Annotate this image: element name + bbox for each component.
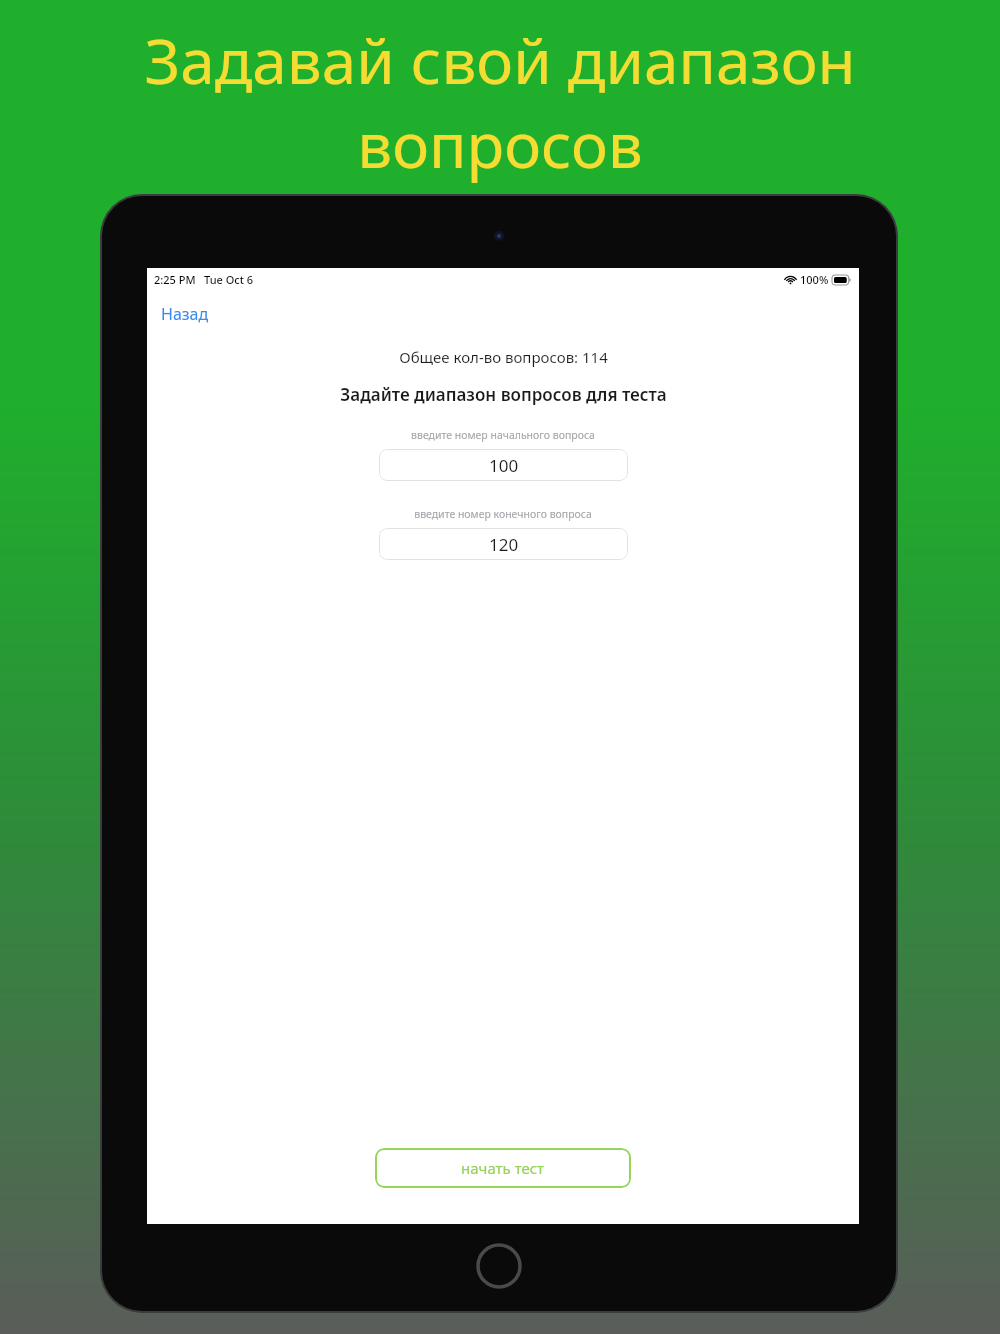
staticText: 2:25 PM <box>154 272 196 287</box>
button[interactable]: Назад <box>157 300 213 328</box>
staticText: введите номер начального вопроса <box>411 428 595 442</box>
button[interactable]: введите номер начального вопроса <box>379 449 628 481</box>
staticText: Задайте диапазон вопросов для теста <box>340 383 667 406</box>
staticText: начать тест <box>461 1158 545 1178</box>
staticText: 100% <box>800 272 829 287</box>
staticText: Задавай свой диапазон <box>144 18 856 102</box>
staticText: 120 <box>489 533 519 556</box>
button[interactable]: введите номер конечного вопроса <box>379 528 628 560</box>
staticText: Назад <box>161 303 209 325</box>
staticText: 100 <box>489 454 519 477</box>
staticText: введите номер конечного вопроса <box>414 507 592 521</box>
button[interactable]: начать тест <box>375 1148 631 1188</box>
staticText: вопросов <box>357 102 643 186</box>
staticText: Tue Oct 6 <box>204 272 254 287</box>
staticText: Общее кол-во вопросов: 114 <box>399 347 608 367</box>
